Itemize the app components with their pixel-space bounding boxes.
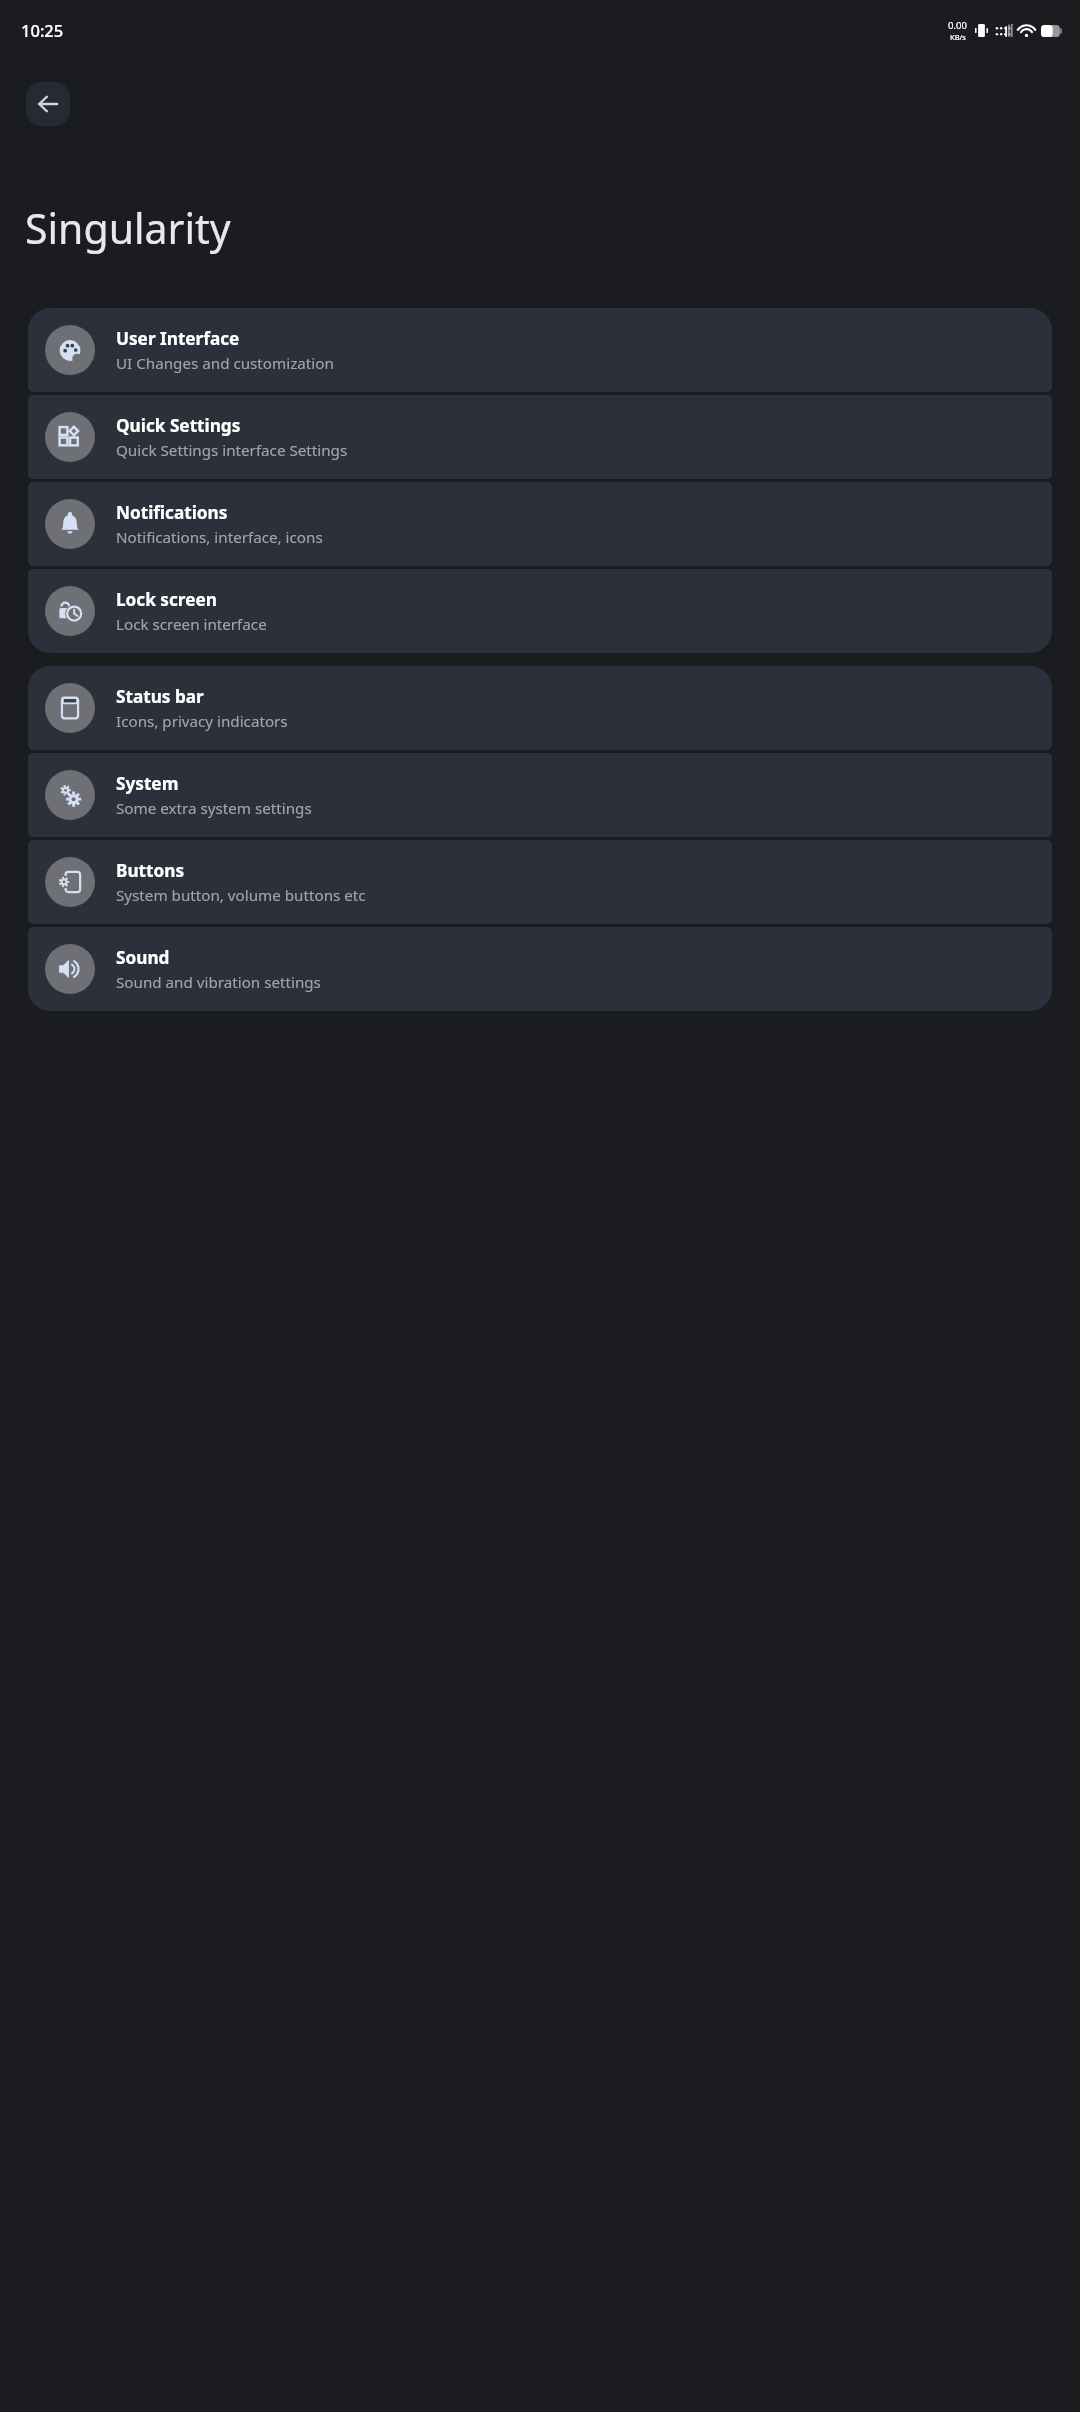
button[interactable]: User Interface: [28, 308, 1052, 392]
staticText: Sound and vibration settings: [116, 972, 321, 993]
staticText: Sound: [116, 946, 170, 969]
staticText: 0.00: [948, 19, 967, 32]
staticText: Notifications, interface, icons: [116, 527, 323, 548]
staticText: Icons, privacy indicators: [116, 711, 288, 732]
staticText: Quick Settings: [116, 414, 241, 437]
staticText: System button, volume buttons etc: [116, 885, 366, 906]
staticText: Singularity: [25, 200, 231, 256]
staticText: User Interface: [116, 327, 240, 350]
button[interactable]: Buttons: [28, 840, 1052, 924]
staticText: Lock screen interface: [116, 614, 267, 635]
staticText: Some extra system settings: [116, 798, 312, 819]
button[interactable]: Back: [26, 82, 70, 126]
button[interactable]: Sound: [28, 927, 1052, 1011]
staticText: KB/s: [950, 32, 966, 42]
staticText: Quick Settings interface Settings: [116, 440, 348, 461]
staticText: 10:25: [21, 19, 64, 41]
staticText: System: [116, 772, 179, 795]
staticText: Lock screen: [116, 588, 217, 611]
button[interactable]: Quick Settings: [28, 395, 1052, 479]
staticText: Notifications: [116, 501, 228, 524]
staticText: Status bar: [116, 685, 204, 708]
staticText: Buttons: [116, 859, 185, 882]
button[interactable]: Notifications: [28, 482, 1052, 566]
staticText: UI Changes and customization: [116, 353, 334, 374]
button[interactable]: System: [28, 753, 1052, 837]
button[interactable]: Status bar: [28, 666, 1052, 750]
button[interactable]: Lock screen: [28, 569, 1052, 653]
